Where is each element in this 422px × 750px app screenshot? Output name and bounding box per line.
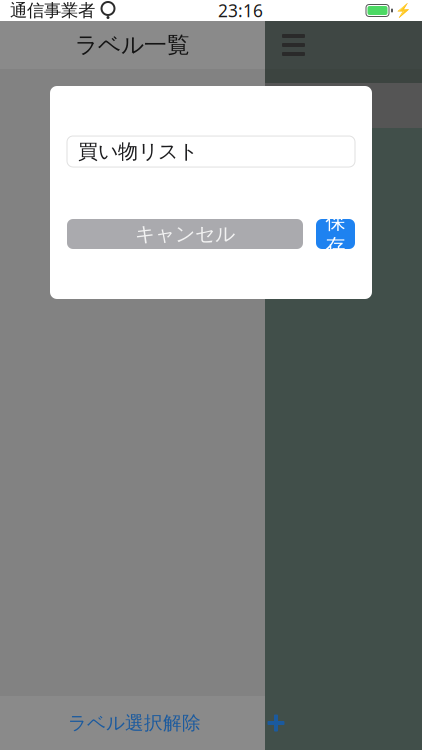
staticText: ラベル選択解除 — [68, 711, 201, 734]
staticText: 買い物リスト — [78, 139, 198, 164]
button[interactable]: キャンセル — [67, 219, 303, 249]
button[interactable]: ラベル選択解除 — [68, 711, 201, 734]
button[interactable]: Menu — [265, 21, 422, 69]
staticText: キャンセル — [135, 222, 235, 246]
staticText: ⚡ — [395, 3, 412, 18]
button[interactable]: 保存 — [316, 219, 355, 249]
staticText: 23:16 — [218, 0, 263, 22]
button[interactable]: Add label — [259, 706, 293, 740]
staticText: 保存 — [325, 209, 345, 258]
staticText: 通信事業者 — [10, 0, 95, 21]
staticText: ラベル一覧 — [75, 31, 190, 59]
